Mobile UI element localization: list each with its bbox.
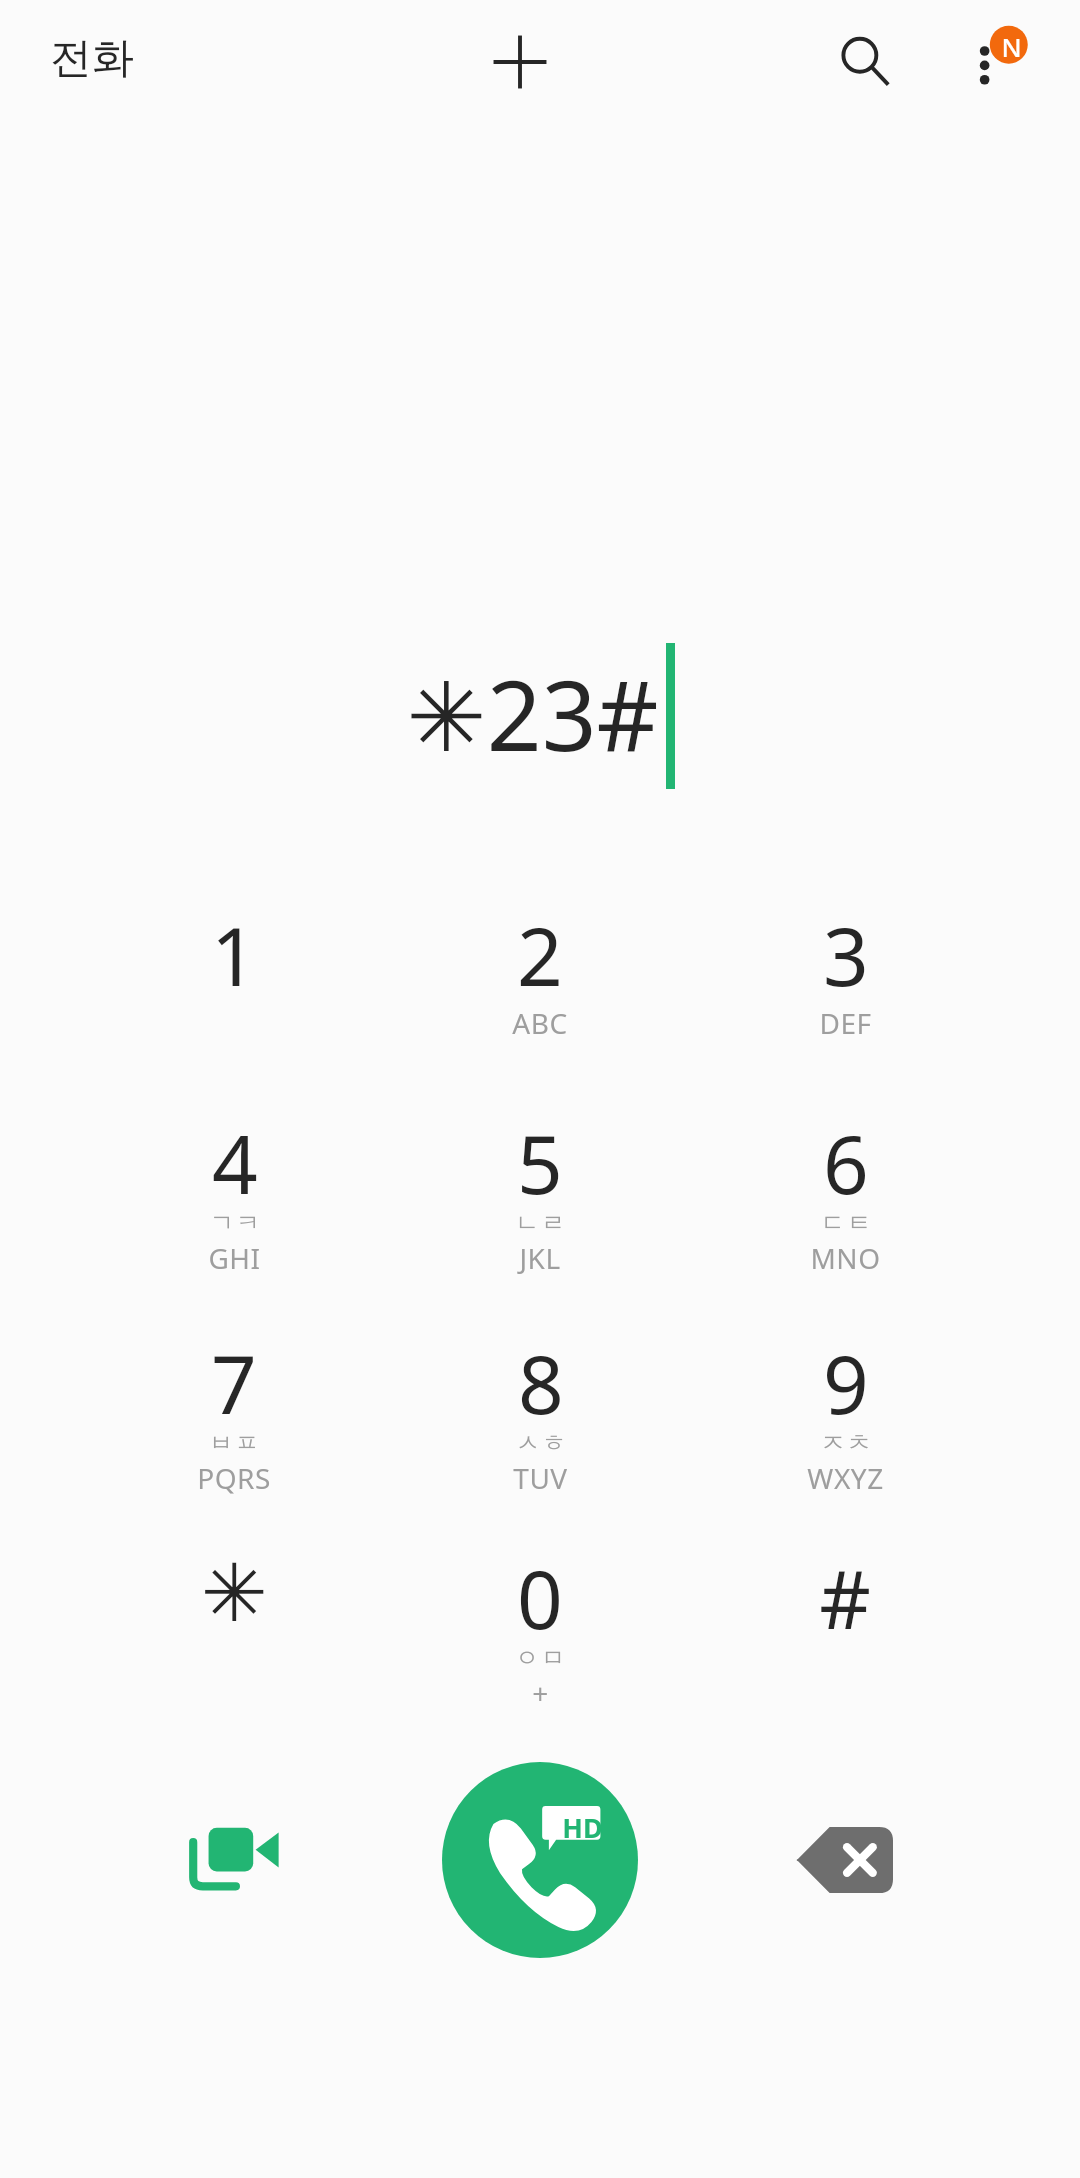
staticText: ABC	[512, 1004, 568, 1042]
staticText: GHI	[208, 1239, 261, 1277]
button[interactable]: 2	[390, 874, 690, 1079]
staticText: ㅇㅁ	[514, 1643, 566, 1673]
staticText: MNO	[810, 1239, 881, 1277]
staticText: ㄴㄹ	[514, 1208, 566, 1238]
button[interactable]: 6	[695, 1082, 995, 1287]
staticText: DEF	[819, 1004, 872, 1042]
button[interactable]: 0	[390, 1517, 690, 1722]
button[interactable]: 5	[390, 1082, 690, 1287]
staticText: 4	[212, 1108, 258, 1208]
button[interactable]: #	[695, 1517, 995, 1722]
button[interactable]: 3	[695, 874, 995, 1079]
staticText: ㄱㅋ	[209, 1208, 261, 1238]
staticText: ㅂㅍ	[208, 1428, 260, 1458]
button[interactable]: 8	[390, 1302, 690, 1507]
staticText: ㅈㅊ	[820, 1428, 872, 1458]
staticText: 1	[211, 900, 257, 1000]
staticText: 3	[823, 900, 869, 1000]
button[interactable]: Video call	[154, 1778, 314, 1938]
staticText: ✳︎23#	[406, 648, 659, 779]
staticText: 전화	[50, 32, 134, 85]
staticText: 0	[517, 1543, 563, 1643]
button[interactable]: Backspace	[765, 1780, 925, 1940]
button[interactable]: 9	[695, 1302, 995, 1507]
button[interactable]: 4	[84, 1082, 384, 1287]
staticText: HD	[562, 1809, 603, 1843]
staticText: JKL	[519, 1239, 561, 1277]
button[interactable]: Call	[442, 1762, 638, 1958]
staticText: 6	[823, 1108, 869, 1208]
staticText: #	[819, 1543, 871, 1643]
staticText: PQRS	[197, 1459, 271, 1497]
staticText: ㄷㅌ	[820, 1208, 872, 1238]
staticText: WXYZ	[807, 1459, 884, 1497]
staticText: 7	[211, 1328, 257, 1428]
staticText: 8	[518, 1328, 564, 1428]
staticText: N	[1001, 29, 1022, 64]
staticText: ✳︎	[200, 1547, 268, 1640]
staticText: 9	[823, 1328, 869, 1428]
button[interactable]: Search	[810, 7, 920, 117]
staticText: +	[532, 1674, 549, 1712]
button[interactable]: More options	[930, 5, 1045, 120]
button[interactable]: ✳︎	[84, 1517, 384, 1722]
button[interactable]: 전화	[42, 26, 142, 91]
staticText: 2	[517, 900, 563, 1000]
button[interactable]: Add contact	[465, 7, 575, 117]
staticText: TUV	[513, 1459, 568, 1497]
button[interactable]: 7	[84, 1302, 384, 1507]
staticText: 5	[517, 1108, 563, 1208]
button[interactable]: 1	[84, 874, 384, 1079]
staticText: ㅅㅎ	[515, 1428, 567, 1458]
